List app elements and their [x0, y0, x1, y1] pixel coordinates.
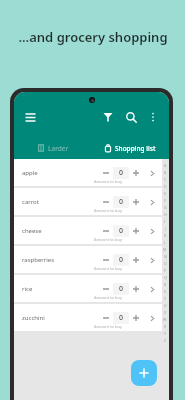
button[interactable]: Decrease	[100, 283, 112, 295]
button[interactable]: Details	[146, 167, 158, 179]
staticText: Z	[164, 338, 167, 345]
button[interactable]: raspberries	[14, 246, 162, 273]
staticText: Amount to buy	[94, 208, 123, 213]
button[interactable]: Decrease	[100, 312, 112, 324]
staticText: zucchini	[22, 314, 45, 322]
staticText: ...and grocery shopping	[18, 28, 168, 46]
button[interactable]: zucchini	[14, 304, 162, 331]
staticText: Y	[164, 331, 166, 338]
staticText: carrot	[22, 198, 39, 206]
staticText: B	[164, 170, 167, 177]
button[interactable]: Decrease	[100, 225, 112, 237]
staticText: I	[164, 219, 166, 226]
staticText: 0	[119, 226, 124, 236]
staticText: Amount to buy	[94, 237, 123, 242]
button[interactable]: Increase	[130, 254, 142, 266]
staticText: raspberries	[22, 256, 55, 264]
staticText: A	[164, 163, 167, 170]
button[interactable]: Details	[146, 254, 158, 266]
staticText: 0	[119, 284, 124, 294]
staticText: 0	[119, 197, 124, 207]
staticText: E	[164, 191, 166, 198]
staticText: Larder	[48, 144, 69, 153]
button[interactable]: rice	[14, 275, 162, 302]
staticText: 0	[119, 255, 124, 265]
staticText: T	[164, 296, 166, 303]
staticText: O	[164, 261, 167, 268]
staticText: N	[164, 254, 167, 261]
button[interactable]: Search	[121, 107, 141, 127]
staticText: Shopping list	[115, 144, 156, 153]
staticText: U	[164, 303, 167, 310]
staticText: 0	[119, 313, 124, 323]
staticText: P	[164, 268, 167, 275]
staticText: R	[164, 282, 167, 289]
button[interactable]: More options	[143, 107, 163, 127]
staticText: apple	[22, 169, 38, 177]
button[interactable]: Details	[146, 225, 158, 237]
staticText: Amount to buy	[94, 266, 123, 271]
staticText: rice	[22, 285, 33, 293]
staticText: W	[163, 317, 167, 324]
button[interactable]: Increase	[130, 225, 142, 237]
button[interactable]: Increase	[130, 312, 142, 324]
button[interactable]: Open navigation menu	[20, 107, 40, 127]
staticText: cheese	[22, 227, 42, 235]
staticText: C	[164, 177, 167, 184]
staticText: Amount to buy	[94, 179, 123, 184]
staticText: Amount to buy	[94, 295, 123, 300]
staticText: Amount to buy	[94, 324, 123, 329]
button[interactable]: Decrease	[100, 167, 112, 179]
staticText: G	[164, 205, 167, 212]
staticText: L	[164, 240, 166, 247]
button[interactable]: Details	[146, 312, 158, 324]
staticText: X	[164, 324, 167, 331]
button[interactable]: Increase	[130, 167, 142, 179]
button[interactable]: Decrease	[100, 196, 112, 208]
button[interactable]: carrot	[14, 188, 162, 215]
staticText: F	[164, 198, 166, 205]
button[interactable]: Add item	[131, 360, 157, 386]
staticText: S	[164, 289, 166, 296]
button[interactable]: Details	[146, 196, 158, 208]
button[interactable]: Increase	[130, 196, 142, 208]
staticText: D	[164, 184, 167, 191]
button[interactable]: Details	[146, 283, 158, 295]
staticText: V	[164, 310, 167, 317]
staticText: J	[165, 226, 166, 233]
staticText: H	[164, 212, 167, 219]
staticText: M	[163, 247, 167, 254]
button[interactable]: Shopping list	[91, 137, 169, 159]
button[interactable]: apple	[14, 159, 162, 186]
staticText: 0	[119, 168, 124, 178]
button[interactable]: Larder	[14, 137, 91, 159]
button[interactable]: cheese	[14, 217, 162, 244]
button[interactable]: Decrease	[100, 254, 112, 266]
button[interactable]: Filter	[98, 107, 118, 127]
staticText: Q	[164, 275, 167, 282]
button[interactable]: Increase	[130, 283, 142, 295]
staticText: K	[164, 233, 167, 240]
